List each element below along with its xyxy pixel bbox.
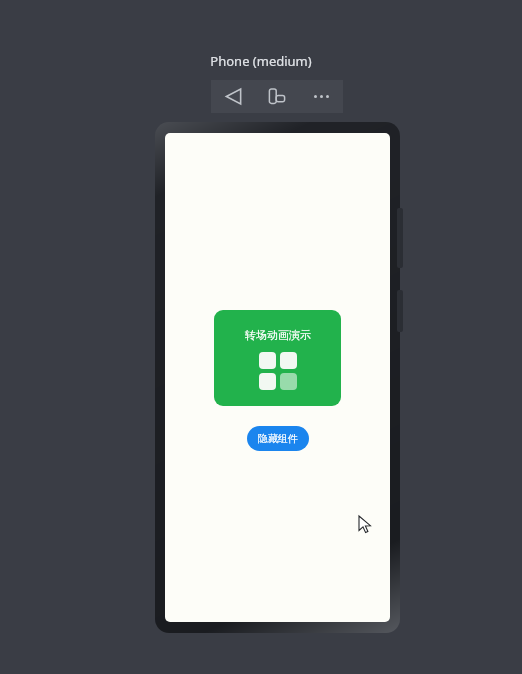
button[interactable]: Rotate device xyxy=(255,80,299,113)
button[interactable]: Back xyxy=(211,80,255,113)
staticText: 隐藏组件 xyxy=(258,432,298,445)
staticText: Phone (medium) xyxy=(210,52,312,70)
button[interactable]: More options xyxy=(299,80,343,113)
staticText: 转场动画演示 xyxy=(245,328,311,342)
button[interactable]: 转场动画演示 xyxy=(214,310,341,406)
button[interactable]: 隐藏组件 xyxy=(247,426,309,451)
